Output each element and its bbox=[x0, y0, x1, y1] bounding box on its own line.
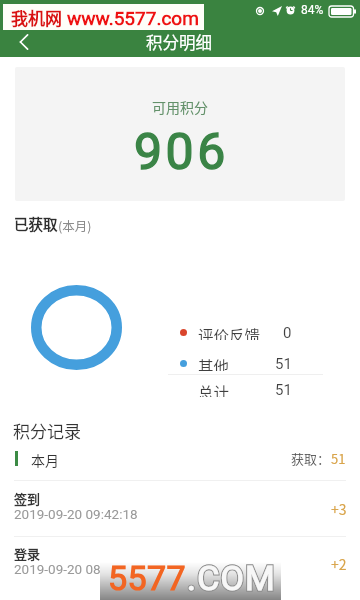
staticText: www.5577.com bbox=[67, 7, 199, 29]
button[interactable]: 签到 bbox=[0, 478, 360, 534]
staticText: 总计 bbox=[198, 381, 230, 397]
staticText: 可用积分 bbox=[152, 97, 208, 117]
staticText: 签到 bbox=[14, 489, 41, 508]
staticText: 登录 bbox=[14, 544, 41, 563]
staticText: 本月 bbox=[31, 450, 59, 470]
staticText: 获取： bbox=[291, 449, 331, 468]
staticText: 0 bbox=[283, 324, 292, 340]
staticText: 51 bbox=[331, 449, 346, 468]
staticText: 2019-09-20 09:42:18 bbox=[14, 506, 138, 522]
staticText: +3 bbox=[331, 499, 347, 519]
staticText: 其他 bbox=[198, 355, 230, 371]
staticText: 906 bbox=[134, 123, 229, 182]
staticText: 已获取 bbox=[14, 213, 58, 234]
button[interactable]: Back bbox=[6, 24, 42, 60]
staticText: 2019-09-20 08:35:45 bbox=[14, 561, 138, 577]
staticText: 51 bbox=[275, 355, 292, 371]
staticText: 积分记录 bbox=[13, 418, 81, 443]
button[interactable]: 登录 bbox=[0, 533, 360, 589]
button[interactable]: 本月 bbox=[0, 440, 360, 477]
staticText: 我机网 bbox=[11, 5, 62, 30]
staticText: 积分明细 bbox=[146, 30, 212, 54]
staticText: 51 bbox=[275, 381, 292, 397]
staticText: .COM bbox=[187, 562, 276, 598]
staticText: (本月) bbox=[58, 216, 92, 234]
staticText: 评价反馈 bbox=[198, 324, 261, 340]
staticText: .COM bbox=[187, 562, 276, 598]
staticText: 84% bbox=[301, 3, 324, 17]
staticText: 5577 bbox=[108, 562, 187, 598]
staticText: +2 bbox=[331, 554, 347, 574]
staticText: 906 bbox=[134, 123, 229, 182]
